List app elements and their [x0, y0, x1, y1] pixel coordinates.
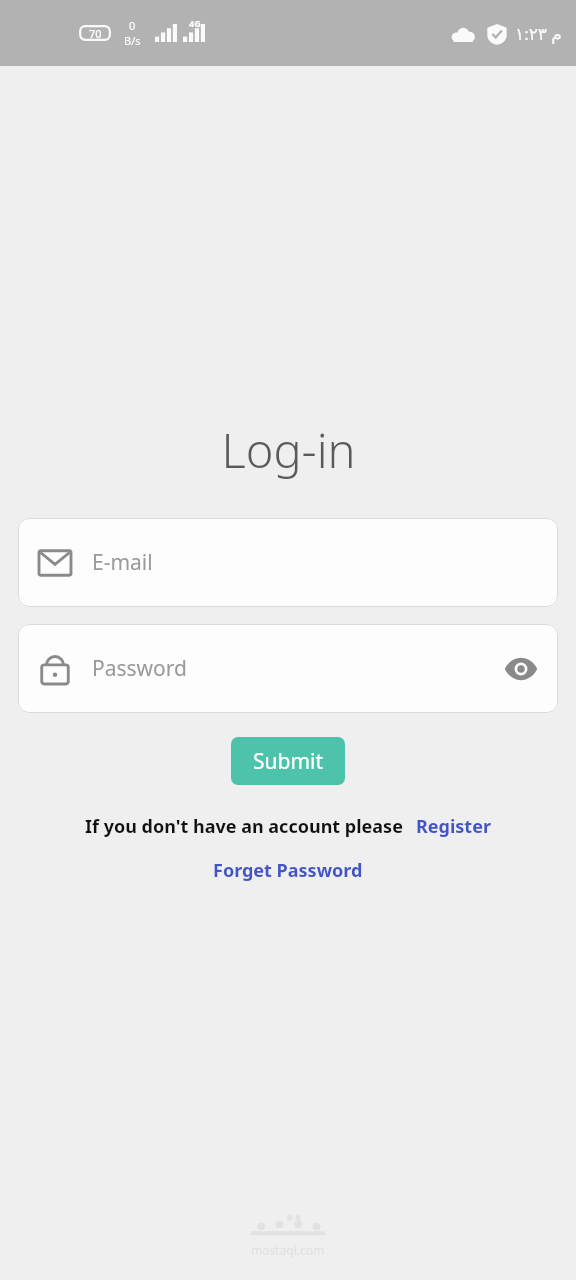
button[interactable]: Show password: [502, 650, 540, 688]
staticText: E-mail: [92, 548, 540, 577]
staticText: Log-in: [221, 418, 356, 482]
staticText: Forget Password: [213, 858, 363, 883]
staticText: م ١:٢٣: [515, 22, 562, 45]
button[interactable]: Register: [416, 814, 491, 839]
staticText: Password: [92, 654, 502, 683]
staticText: 0: [129, 18, 136, 33]
staticText: Register: [416, 814, 491, 839]
staticText: If you don't have an account please: [85, 814, 403, 839]
button[interactable]: E-mail: [18, 518, 558, 607]
button[interactable]: Submit: [231, 737, 345, 785]
button[interactable]: Forget Password: [213, 858, 363, 883]
staticText: mostaql.com: [251, 1242, 325, 1258]
staticText: B/s: [124, 33, 141, 48]
staticText: 4G: [189, 17, 201, 29]
button[interactable]: Password: [18, 624, 558, 713]
staticText: 70: [89, 26, 102, 41]
staticText: Submit: [253, 747, 324, 776]
